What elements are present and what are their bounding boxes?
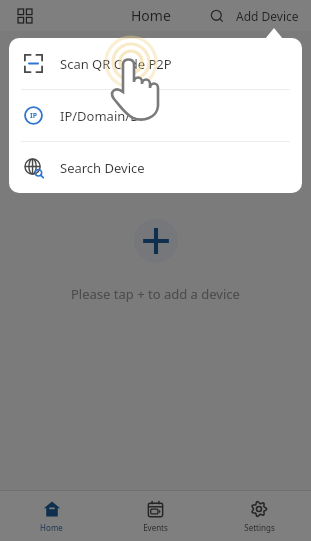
button[interactable]: Scan QR Code P2P: [9, 38, 302, 89]
staticText: IP: [30, 111, 38, 121]
button[interactable]: Events: [103, 491, 207, 541]
staticText: Please tap + to add a device: [71, 285, 240, 303]
button[interactable]: Settings: [207, 491, 311, 541]
button[interactable]: Devices grid: [11, 2, 39, 30]
staticText: Events: [143, 522, 168, 533]
button[interactable]: Search Device: [9, 142, 302, 193]
staticText: Home: [40, 522, 63, 533]
staticText: Settings: [244, 522, 275, 533]
staticText: Add Device: [236, 8, 299, 24]
staticText: IP/Domain/D: [60, 107, 140, 125]
button[interactable]: Search: [204, 3, 230, 29]
button[interactable]: Home: [0, 491, 103, 541]
staticText: Scan QR Code P2P: [60, 55, 172, 73]
staticText: Home: [131, 6, 171, 25]
staticText: Search Device: [60, 159, 145, 177]
button[interactable]: IP: [9, 90, 302, 141]
button[interactable]: Add Device: [230, 4, 305, 28]
button[interactable]: Add a device: [134, 219, 178, 263]
